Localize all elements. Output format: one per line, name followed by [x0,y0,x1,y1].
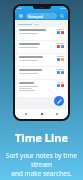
staticText: Notepad [28,14,43,19]
button[interactable]: Timeline [38,110,46,118]
button[interactable]: Compose note [54,96,64,106]
button[interactable]: Notes [22,110,30,118]
button[interactable]: Notepad [26,13,57,19]
button[interactable] [17,54,66,66]
button[interactable]: Open navigation menu [18,13,24,19]
button[interactable] [17,41,66,53]
staticText: Sort your notes by time stream and make … [0,151,83,178]
staticText: Time Line [15,130,68,145]
button[interactable]: Search [59,13,65,19]
button[interactable] [17,27,66,40]
button[interactable]: Settings [53,110,61,118]
button[interactable] [17,80,66,97]
button[interactable] [17,67,66,79]
